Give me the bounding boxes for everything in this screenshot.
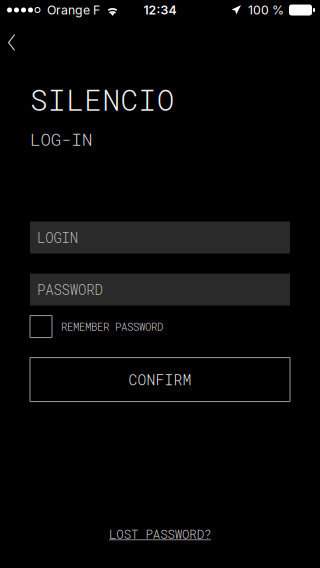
staticText: LOST PASSWORD? [109,526,211,542]
staticText: PASSWORD [37,280,102,299]
staticText: Orange F [47,3,100,17]
button[interactable]: LOST PASSWORD? [101,522,219,546]
staticText: CONFIRM [128,370,191,389]
button[interactable]: PASSWORD [30,273,290,305]
button[interactable]: LOGIN [30,221,290,253]
staticText: REMEMBER PASSWORD [61,319,163,334]
button[interactable]: Back [0,20,32,55]
button[interactable]: CONFIRM [0,357,320,401]
staticText: LOGIN [37,228,78,247]
staticText: LOG-IN [30,128,92,151]
staticText: SILENCIO [30,80,175,119]
button[interactable]: REMEMBER PASSWORD [0,315,320,337]
staticText: 12:34 [143,3,176,17]
staticText: 100 % [248,3,284,17]
